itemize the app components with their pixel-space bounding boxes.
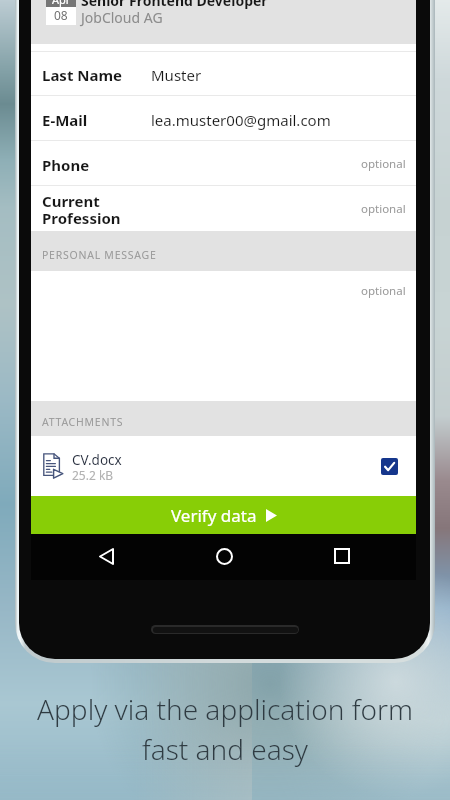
staticText: Muster (151, 65, 202, 85)
button[interactable]: E-Mail (31, 96, 416, 140)
staticText: Last Name (42, 65, 123, 85)
button[interactable]: Back (84, 534, 128, 578)
staticText: ATTACHMENTS (42, 415, 124, 429)
button[interactable]: Current (31, 186, 416, 231)
staticText: 08 (54, 7, 68, 23)
staticText: 25.2 kB (72, 467, 114, 483)
other: Attachment selected (381, 458, 398, 475)
staticText: Apply via the application form (37, 690, 413, 728)
staticText: optional (361, 283, 406, 299)
staticText: fast and easy (142, 730, 308, 768)
button[interactable]: optional (31, 271, 416, 401)
staticText: PERSONAL MESSAGE (42, 248, 157, 262)
staticText: optional (361, 201, 406, 217)
staticText: Current (42, 191, 100, 211)
button[interactable]: CV.docx (31, 436, 416, 496)
button[interactable]: Verify data (31, 496, 416, 534)
staticText: Phone (42, 155, 90, 175)
staticText: JobCloud AG (81, 8, 163, 27)
staticText: Senior Frontend Developer (81, 0, 268, 10)
staticText: Verify data (171, 504, 257, 527)
staticText: Profession (42, 208, 121, 228)
staticText: E-Mail (42, 110, 88, 130)
staticText: CV.docx (72, 451, 122, 469)
staticText: lea.muster00@gmail.com (151, 110, 331, 130)
staticText: optional (361, 156, 406, 172)
button[interactable]: Apr (31, 0, 416, 44)
button[interactable]: Recents (320, 534, 364, 578)
button[interactable]: Home (202, 534, 246, 578)
button[interactable]: Last Name (31, 52, 416, 95)
staticText: Apr (52, 0, 71, 7)
button[interactable]: Phone (31, 141, 416, 185)
